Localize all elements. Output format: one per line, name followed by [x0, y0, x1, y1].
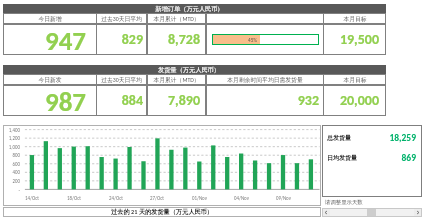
button[interactable]: 932	[206, 85, 324, 116]
button[interactable]: 过去30天日平均	[96, 74, 147, 85]
staticText: 18,259	[389, 132, 416, 144]
staticText: 14/Oct	[25, 195, 39, 201]
button[interactable]: 本月目标	[323, 13, 386, 24]
staticText: 20,000	[339, 92, 379, 109]
button[interactable]: 987	[3, 85, 97, 116]
staticText: 800	[12, 152, 20, 158]
staticText: 987	[44, 85, 86, 116]
staticText: 过去的 21 天的发货量（万元人民币）	[111, 208, 213, 216]
staticText: 400	[12, 169, 20, 175]
staticText: 本月累计（MTD）	[153, 15, 200, 22]
staticText: 日均发货量	[327, 154, 357, 162]
staticText: 本月目标	[343, 15, 367, 22]
button[interactable]: 45%	[206, 24, 324, 55]
button[interactable]: 本月剩余时间平均日需发货量	[206, 74, 324, 85]
button[interactable]: 本月累计（MTD）	[147, 13, 206, 24]
staticText: 新增订单（万元人民币）	[155, 5, 224, 13]
staticText: 1,200	[8, 135, 20, 141]
staticText: 27/Oct	[150, 195, 164, 201]
staticText: 829	[121, 31, 143, 48]
button[interactable]: 过去30天日平均	[96, 13, 147, 24]
staticText: 1,000	[8, 144, 20, 150]
staticText: 869	[401, 152, 416, 164]
button[interactable]: 本月累计（MTD）	[147, 74, 206, 85]
button[interactable]: 7,890	[147, 85, 206, 116]
button[interactable]	[206, 13, 324, 24]
staticText: 过去30天日平均	[101, 76, 142, 83]
staticText: 884	[121, 92, 143, 109]
staticText: 8,728	[168, 31, 200, 48]
button[interactable]: 947	[3, 24, 97, 55]
staticText: 请调整显示天数	[325, 199, 363, 206]
staticText: 932	[297, 92, 319, 109]
staticText: 今日新增	[38, 15, 62, 22]
staticText: 今日新发	[38, 76, 62, 83]
staticText: 18/Oct	[67, 195, 81, 201]
staticText: 600	[12, 161, 20, 167]
staticText: 09/Nov	[276, 195, 291, 201]
staticText: 发货量（万元人民币）	[158, 66, 220, 74]
staticText: 200	[12, 178, 20, 184]
button[interactable]: Horizontal scroll bar	[322, 208, 422, 217]
staticText: 04/Nov	[234, 195, 249, 201]
staticText: 本月累计（MTD）	[153, 76, 200, 83]
staticText: 过去30天日平均	[101, 15, 142, 22]
staticText: 45%	[248, 37, 257, 43]
button[interactable]: 今日新增	[3, 13, 97, 24]
button[interactable]: 今日新发	[3, 74, 97, 85]
button[interactable]: 19,500	[323, 24, 386, 55]
staticText: 1,400	[8, 127, 20, 133]
button[interactable]: 本月目标	[323, 74, 386, 85]
staticText: -	[18, 187, 20, 193]
button[interactable]: 884	[96, 85, 147, 116]
button[interactable]: 总发货量	[322, 125, 422, 197]
staticText: 01/Nov	[192, 195, 207, 201]
staticText: 本月目标	[343, 76, 367, 83]
staticText: 19,500	[339, 31, 379, 48]
button[interactable]: 20,000	[323, 85, 386, 116]
button[interactable]: 8,728	[147, 24, 206, 55]
staticText: 本月剩余时间平均日需发货量	[227, 76, 303, 83]
button[interactable]: 829	[96, 24, 147, 55]
staticText: 24/Oct	[109, 195, 123, 201]
staticText: 7,890	[168, 92, 200, 109]
staticText: 总发货量	[327, 134, 351, 142]
button[interactable]: 45%	[212, 34, 319, 45]
staticText: 947	[44, 24, 86, 55]
